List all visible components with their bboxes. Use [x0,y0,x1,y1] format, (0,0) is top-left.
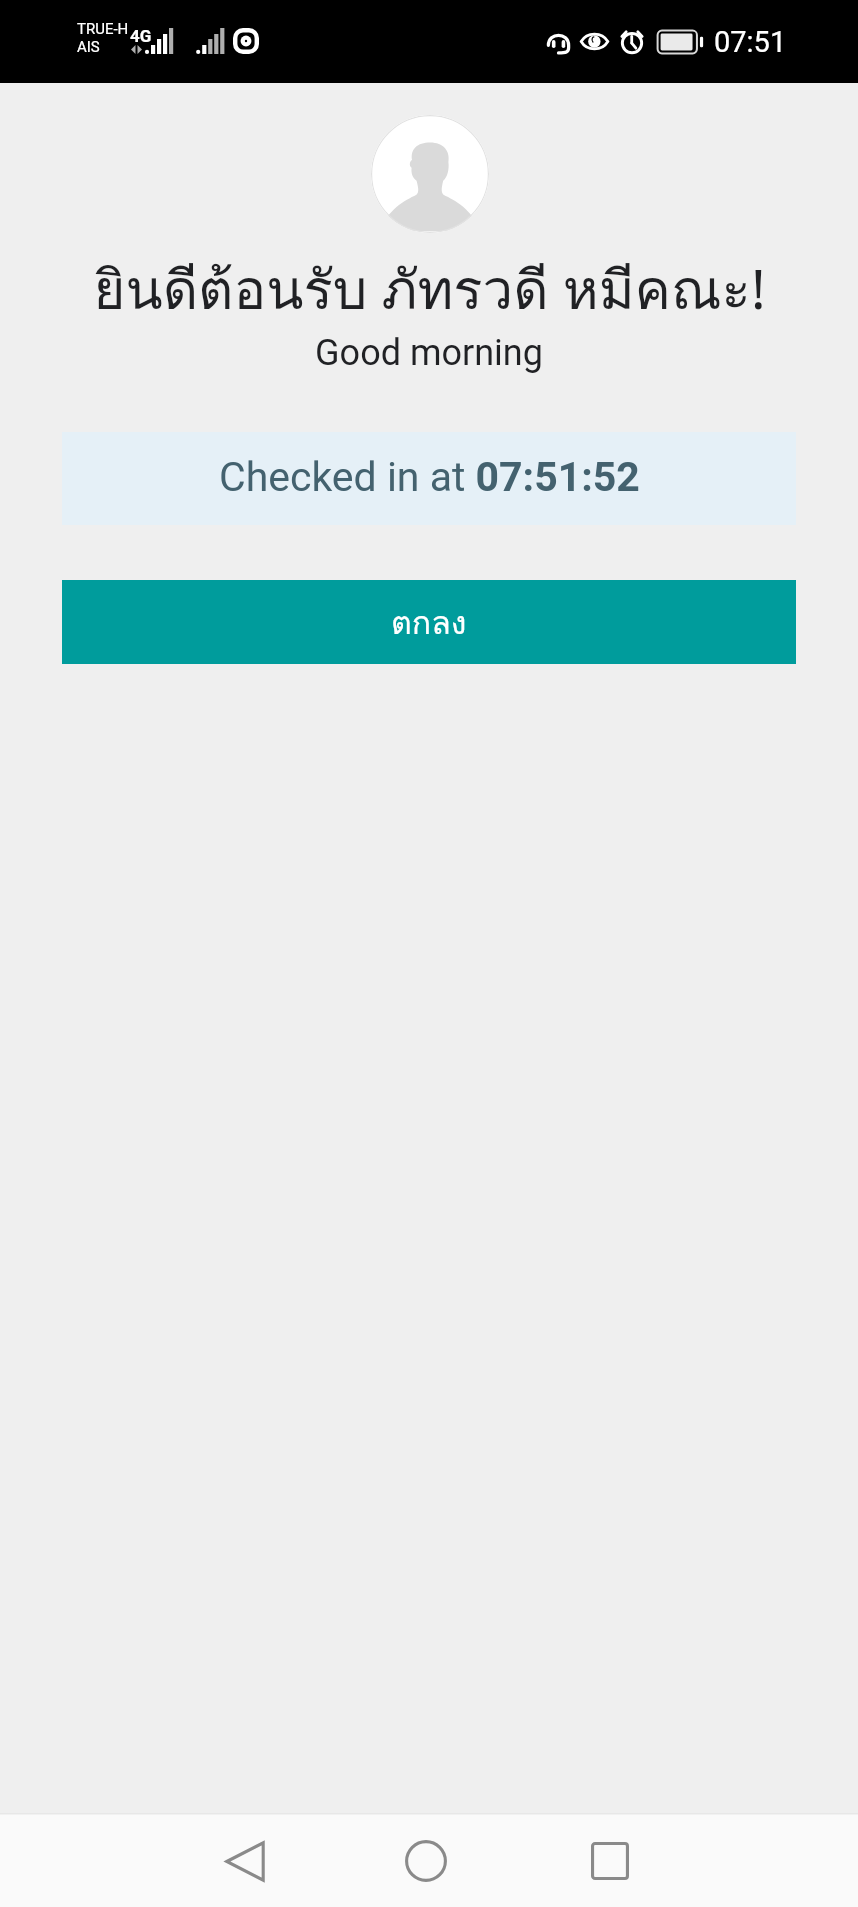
staticText: 4G [130,26,152,46]
button[interactable]: ตกลง [62,580,796,664]
staticText: Checked in at 07:51:52 [219,453,640,501]
staticText: 07:51 [714,25,787,59]
button[interactable]: Back [160,1815,330,1907]
staticText: TRUE-H [77,20,129,38]
button[interactable]: Recent apps [525,1815,695,1907]
button[interactable]: Home [341,1815,511,1907]
staticText: Good morning [315,332,543,374]
staticText: ตกลง [391,597,467,648]
staticText: ยินดีต้อนรับ ภัทรวดี หมีคณะ! [93,246,766,333]
staticText: AIS [77,38,100,56]
